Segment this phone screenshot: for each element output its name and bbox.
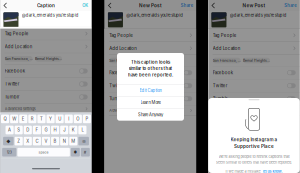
button[interactable]: U [56, 115, 64, 123]
staticText: F [35, 127, 38, 133]
button[interactable]: Share [181, 0, 196, 11]
staticText: Add Location [5, 44, 33, 49]
button[interactable]: 123 [2, 148, 16, 156]
staticText: Y [49, 116, 52, 121]
button[interactable]: Tag People [0, 27, 92, 40]
button[interactable]: Advanced Settings [105, 105, 196, 116]
staticText: Tumblr [5, 94, 20, 100]
button[interactable]: T [37, 115, 45, 123]
button[interactable]: Twitter [0, 78, 92, 90]
button[interactable]: San Francisco, California [213, 58, 241, 63]
button[interactable]: Bernal Heights, San ... [243, 58, 270, 63]
button[interactable]: V [42, 137, 50, 145]
button[interactable]: # [81, 148, 90, 156]
button[interactable]: OK [82, 0, 92, 11]
button[interactable]: Back [105, 0, 115, 11]
staticText: New Post [139, 3, 162, 8]
staticText: Caption [37, 3, 55, 8]
button[interactable]: L [78, 126, 86, 134]
button[interactable]: Facebook [208, 66, 300, 79]
button[interactable]: J [60, 126, 68, 134]
button[interactable]: Y [46, 115, 55, 123]
button[interactable]: Bernal Heights, San ... [35, 56, 62, 62]
button[interactable]: Add Location [0, 40, 92, 53]
button[interactable]: S [15, 126, 23, 134]
button[interactable]: Q [1, 115, 9, 123]
staticText: @dark_emeralds you're stupid [230, 13, 287, 18]
button[interactable]: Add Location [105, 42, 196, 55]
button[interactable]: Back [0, 0, 10, 11]
button[interactable]: Tumblr [0, 91, 92, 103]
staticText: C [35, 138, 38, 144]
staticText: Tag People [109, 33, 133, 38]
button[interactable]: C [33, 137, 41, 145]
button[interactable]: Bernal Heights, San ... [140, 58, 167, 63]
staticText: G [44, 127, 47, 133]
button[interactable]: San Francisco, California [109, 58, 137, 63]
staticText: Facebook [109, 70, 129, 75]
staticText: E [22, 116, 25, 121]
button[interactable]: Tumblr [208, 92, 300, 105]
button[interactable]: San Francisco, California [5, 56, 33, 62]
button[interactable]: Learn More [117, 97, 184, 108]
button[interactable]: O [74, 115, 82, 123]
staticText: have been reported. [128, 72, 173, 78]
button[interactable]: Edit Caption [117, 84, 184, 96]
button[interactable]: I [65, 115, 73, 123]
button[interactable]: A [6, 126, 14, 134]
button[interactable]: Twitter [105, 79, 196, 92]
button[interactable]: G [42, 126, 50, 134]
button[interactable]: H [51, 126, 59, 134]
button[interactable]: M [69, 137, 77, 145]
staticText: L [81, 127, 83, 133]
button[interactable]: Tag People [208, 29, 300, 42]
staticText: Supportive Place [234, 143, 274, 149]
staticText: @dark_emeralds you're stupid [126, 13, 183, 18]
button[interactable]: F [33, 126, 41, 134]
button[interactable]: Share Anyway [117, 109, 184, 121]
button[interactable]: ◎ [78, 137, 89, 145]
button[interactable]: ● [71, 148, 80, 156]
button[interactable]: B [51, 137, 59, 145]
button[interactable]: K [69, 126, 77, 134]
button[interactable]: Facebook [105, 66, 196, 79]
button[interactable]: X [24, 137, 32, 145]
staticText: space [39, 150, 49, 154]
staticText: Bernal Heights, San ... [243, 58, 270, 63]
button[interactable]: Advanced Settings [0, 104, 92, 114]
staticText: ◆ [6, 139, 10, 143]
staticText: R [31, 116, 34, 121]
staticText: Facebook [213, 70, 233, 75]
staticText: let us know. [263, 169, 283, 173]
button[interactable]: ◆ [3, 137, 14, 145]
staticText: Tumblr [109, 96, 124, 101]
staticText: Twitter [109, 83, 124, 88]
staticText: A [8, 127, 11, 133]
button[interactable]: let us know. [263, 169, 283, 173]
button[interactable]: Facebook [0, 65, 92, 77]
button[interactable]: E [19, 115, 27, 123]
button[interactable]: Share [284, 0, 300, 11]
button[interactable]: Tumblr [105, 92, 196, 105]
button[interactable]: Twitter [208, 79, 300, 92]
button[interactable]: Advanced Settings [208, 105, 300, 116]
button[interactable]: W [10, 115, 18, 123]
staticText: V [44, 138, 47, 144]
button[interactable]: Z [15, 137, 23, 145]
button[interactable]: space [17, 148, 70, 156]
staticText: M [71, 138, 75, 144]
button[interactable]: Add Location [208, 42, 300, 55]
staticText: T [40, 116, 43, 121]
staticText: ◎ [82, 139, 85, 143]
staticText: Share [181, 3, 193, 8]
staticText: We're asking people to rethink captions … [218, 154, 289, 159]
button[interactable]: P [83, 115, 91, 123]
staticText: Tag People [213, 33, 237, 38]
staticText: If we made a mistake, [225, 169, 261, 173]
button[interactable]: R [28, 115, 36, 123]
button[interactable]: Back [208, 0, 218, 11]
staticText: # [84, 150, 87, 155]
button[interactable]: D [24, 126, 32, 134]
button[interactable]: Tag People [105, 29, 196, 42]
button[interactable]: N [60, 137, 68, 145]
